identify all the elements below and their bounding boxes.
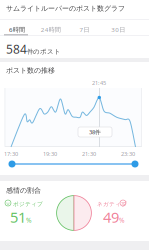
staticText: 17:30: [4, 150, 18, 158]
staticText: %: [26, 216, 32, 225]
staticText: 38件: [89, 128, 101, 136]
staticText: 49: [103, 207, 119, 227]
staticText: ポジティブ: [13, 200, 43, 208]
staticText: ポスト数の推移: [6, 66, 55, 75]
button[interactable]: 6時間: [0, 22, 34, 37]
button[interactable]: Range start: [8, 160, 15, 167]
staticText: 21:30: [82, 150, 96, 158]
button[interactable]: 30日: [101, 22, 135, 37]
button[interactable]: 24時間: [34, 22, 68, 37]
staticText: 584: [6, 41, 27, 57]
staticText: 51: [10, 207, 26, 227]
staticText: サムライトルーパーのポスト数グラフ: [6, 4, 125, 13]
staticText: 7日: [79, 25, 89, 34]
staticText: %: [119, 216, 125, 225]
button[interactable]: 7日: [67, 22, 101, 37]
staticText: 21:45: [92, 79, 106, 87]
staticText: 19:30: [43, 150, 57, 158]
staticText: 23:30: [121, 150, 135, 158]
staticText: 30日: [111, 25, 125, 34]
staticText: 6時間: [9, 25, 25, 34]
staticText: 件のポスト: [27, 48, 61, 56]
staticText: ネガティブ: [97, 200, 127, 208]
button[interactable]: Range end: [131, 160, 138, 167]
staticText: 24時間: [41, 25, 61, 34]
staticText: 感情の割合: [6, 186, 41, 195]
